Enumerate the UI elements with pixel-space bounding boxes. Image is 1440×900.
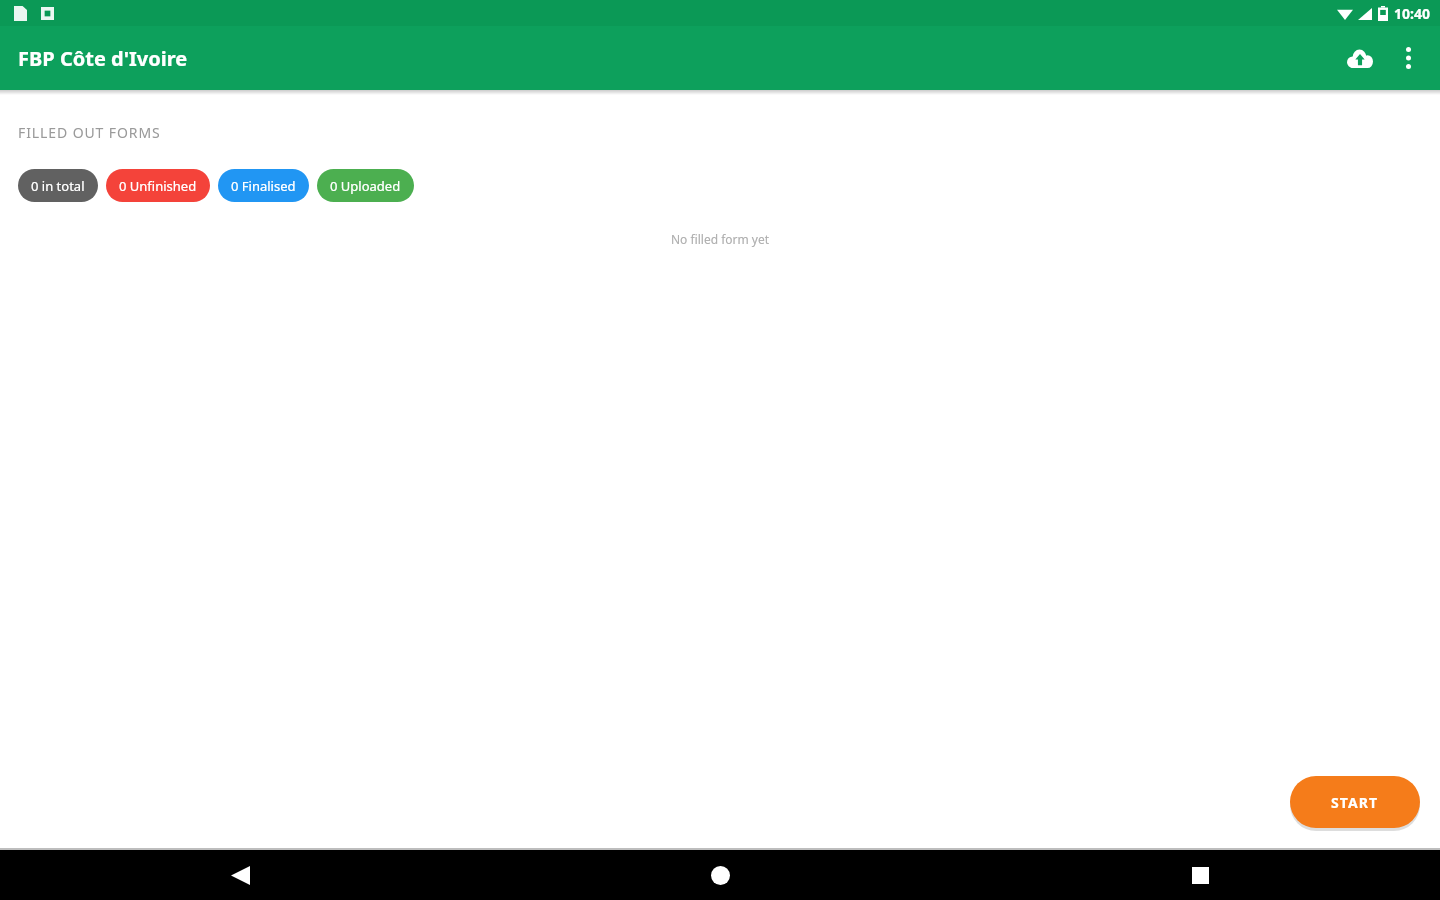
- staticText: 0 Finalised: [231, 177, 296, 195]
- button[interactable]: START: [1290, 776, 1420, 828]
- button[interactable]: 0 Uploaded: [317, 169, 414, 202]
- button[interactable]: Home: [480, 850, 960, 900]
- button[interactable]: 0 Unfinished: [106, 169, 210, 202]
- button[interactable]: 0 Finalised: [218, 169, 309, 202]
- button[interactable]: 0 in total: [18, 169, 98, 202]
- staticText: No filled form yet: [671, 231, 770, 247]
- button[interactable]: Upload: [1336, 34, 1384, 82]
- staticText: 0 in total: [31, 177, 85, 195]
- staticText: FBP Côte d'Ivoire: [18, 45, 188, 72]
- button[interactable]: Recent apps: [960, 850, 1440, 900]
- button[interactable]: Back: [0, 850, 480, 900]
- staticText: 0 Unfinished: [119, 177, 197, 195]
- staticText: START: [1331, 793, 1379, 812]
- staticText: 0 Uploaded: [330, 177, 401, 195]
- staticText: FILLED OUT FORMS: [18, 123, 161, 142]
- staticText: 10:40: [1394, 4, 1430, 23]
- button[interactable]: More options: [1384, 34, 1432, 82]
